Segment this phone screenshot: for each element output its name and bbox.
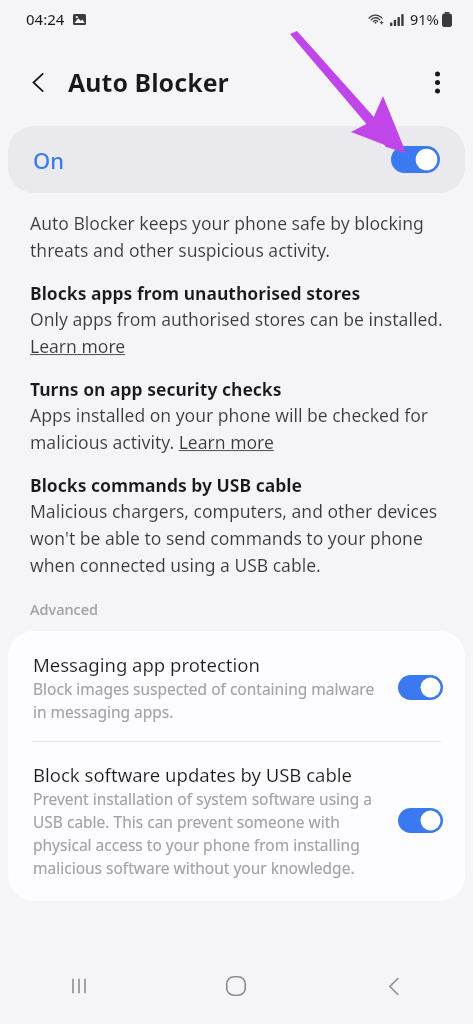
staticText: Auto Blocker keeps your phone safe by bl…: [30, 211, 447, 262]
button[interactable]: On: [8, 126, 465, 193]
staticText: Messaging app protection: [33, 652, 260, 677]
button[interactable]: More options: [413, 58, 461, 106]
button[interactable]: Block software updates by USB cable: [8, 742, 465, 901]
button[interactable]: Only apps from authorised stores can be …: [30, 307, 443, 358]
staticText: Blocks apps from unauthorised stores: [30, 281, 361, 305]
button[interactable]: Messaging app protection: [8, 631, 465, 741]
button[interactable]: Home: [157, 948, 315, 1024]
staticText: Auto Blocker: [68, 65, 229, 99]
staticText: Turns on app security checks: [30, 377, 282, 401]
staticText: On: [33, 145, 65, 175]
staticText: Advanced: [30, 599, 98, 619]
button[interactable]: Toggle, on: [398, 808, 443, 833]
button[interactable]: Toggle, on: [398, 675, 443, 700]
staticText: Block software updates by USB cable: [33, 762, 353, 787]
staticText: 91%: [410, 9, 439, 29]
staticText: Malicious chargers, computers, and other…: [30, 499, 447, 577]
button[interactable]: Recent apps: [0, 948, 157, 1024]
staticText: Blocks commands by USB cable: [30, 473, 302, 497]
button[interactable]: Back: [14, 58, 62, 106]
staticText: Block images suspected of containing mal…: [33, 678, 384, 723]
staticText: 04:24: [26, 9, 65, 29]
button[interactable]: Back: [315, 948, 473, 1024]
button[interactable]: Apps installed on your phone will be che…: [30, 403, 447, 454]
staticText: Prevent installation of system software …: [33, 788, 384, 879]
button[interactable]: Toggle, on: [391, 146, 440, 173]
